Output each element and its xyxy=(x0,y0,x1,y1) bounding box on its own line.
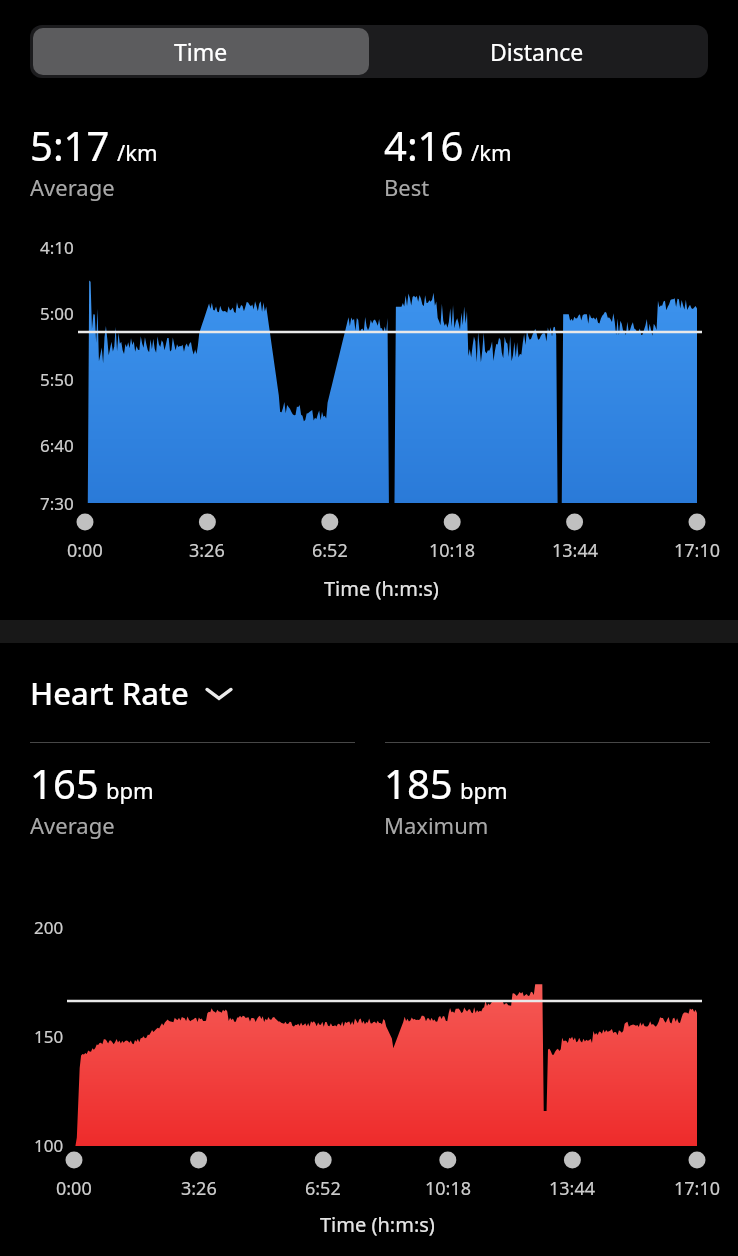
staticText: /km xyxy=(117,137,158,167)
staticText: 200 xyxy=(34,916,64,939)
staticText: 13:44 xyxy=(549,1176,596,1201)
staticText: Average xyxy=(30,172,115,202)
button[interactable]: Distance xyxy=(369,28,705,75)
staticText: 10:18 xyxy=(429,538,476,563)
staticText: 0:00 xyxy=(67,538,103,563)
staticText: 4:16 xyxy=(384,118,464,172)
staticText: 5:17 xyxy=(30,118,110,172)
staticText: 17:10 xyxy=(674,538,721,563)
staticText: Time (h:m:s) xyxy=(324,575,439,602)
staticText: 6:52 xyxy=(305,1176,341,1201)
staticText: 185 xyxy=(384,756,453,810)
button[interactable]: Time xyxy=(33,28,369,75)
staticText: Average xyxy=(30,810,115,840)
staticText: 100 xyxy=(34,1134,64,1157)
staticText: 6:52 xyxy=(312,538,348,563)
staticText: bpm xyxy=(106,775,154,805)
staticText: 165 xyxy=(30,756,99,810)
staticText: Distance xyxy=(490,36,584,67)
staticText: /km xyxy=(471,137,512,167)
staticText: Maximum xyxy=(384,810,489,840)
staticText: 5:50 xyxy=(40,368,74,391)
staticText: Heart Rate xyxy=(30,672,189,714)
staticText: Best xyxy=(384,172,430,202)
staticText: bpm xyxy=(460,775,508,805)
staticText: 0:00 xyxy=(56,1176,92,1201)
staticText: 10:18 xyxy=(425,1176,472,1201)
staticText: 3:26 xyxy=(181,1176,217,1201)
staticText: 5:00 xyxy=(40,302,74,325)
staticText: 3:26 xyxy=(189,538,225,563)
staticText: 150 xyxy=(34,1025,64,1048)
staticText: 7:30 xyxy=(40,492,74,515)
button[interactable]: Heart Rate, collapse section xyxy=(30,672,234,714)
staticText: 13:44 xyxy=(552,538,599,563)
staticText: 17:10 xyxy=(674,1176,721,1201)
staticText: 6:40 xyxy=(40,434,74,457)
staticText: Time (h:m:s) xyxy=(320,1211,435,1238)
staticText: Time xyxy=(174,36,228,67)
staticText: 4:10 xyxy=(40,236,74,259)
